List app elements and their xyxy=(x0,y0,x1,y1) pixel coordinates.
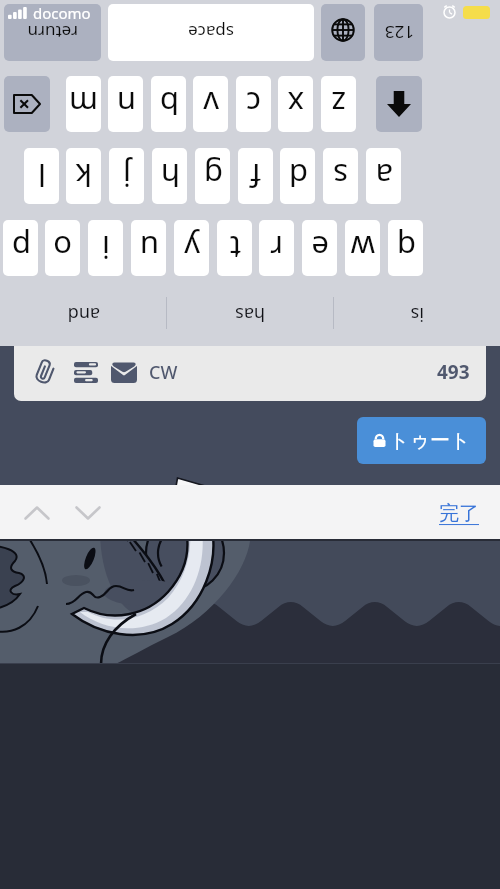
staticText: CW xyxy=(149,360,178,385)
staticText: is xyxy=(410,302,424,327)
button[interactable] xyxy=(321,4,365,61)
staticText: s xyxy=(333,155,348,197)
button[interactable]: j xyxy=(109,148,144,204)
button[interactable]: z xyxy=(321,76,356,132)
button[interactable]: i xyxy=(88,220,123,276)
button[interactable]: Change visibility xyxy=(108,356,140,388)
button[interactable]: space xyxy=(108,4,314,61)
button[interactable]: h xyxy=(152,148,187,204)
staticText: b xyxy=(159,83,179,125)
staticText: has xyxy=(235,302,265,327)
staticText: f xyxy=(250,155,261,197)
staticText: and xyxy=(67,302,100,327)
staticText: z xyxy=(331,83,346,125)
button[interactable]: s xyxy=(323,148,358,204)
staticText: e xyxy=(311,227,329,269)
staticText: r xyxy=(270,227,283,269)
button[interactable]: 123 xyxy=(374,4,423,61)
button[interactable]: w xyxy=(345,220,380,276)
button[interactable]: Next field xyxy=(69,495,107,531)
staticText: h xyxy=(160,155,180,197)
staticText: o xyxy=(53,227,72,269)
staticText: y xyxy=(184,227,200,269)
button[interactable]: x xyxy=(278,76,313,132)
other: Next keyboard xyxy=(331,18,355,42)
staticText: c xyxy=(246,83,261,125)
button[interactable]: g xyxy=(195,148,230,204)
staticText: p xyxy=(11,227,31,269)
button[interactable] xyxy=(376,76,422,132)
button[interactable]: y xyxy=(174,220,209,276)
staticText: t xyxy=(229,227,241,269)
staticText: m xyxy=(69,83,98,125)
staticText: x xyxy=(287,83,304,125)
button[interactable]: d xyxy=(280,148,315,204)
button[interactable] xyxy=(4,76,50,132)
button[interactable]: r xyxy=(259,220,294,276)
other: Shift xyxy=(387,91,411,117)
button[interactable]: t xyxy=(217,220,252,276)
button[interactable]: Add media xyxy=(29,356,61,388)
button[interactable]: n xyxy=(108,76,143,132)
button[interactable]: v xyxy=(193,76,228,132)
staticText: u xyxy=(139,227,159,269)
staticText: return xyxy=(27,21,78,44)
button[interactable]: Previous field xyxy=(18,495,56,531)
button[interactable]: p xyxy=(3,220,38,276)
button[interactable]: m xyxy=(66,76,101,132)
button[interactable]: c xyxy=(236,76,271,132)
staticText: docomo xyxy=(33,3,91,23)
staticText: d xyxy=(288,155,308,197)
staticText: n xyxy=(116,83,136,125)
staticText: l xyxy=(38,155,46,197)
button[interactable]: has xyxy=(178,288,322,340)
button[interactable]: 完了 xyxy=(430,493,488,533)
button[interactable]: e xyxy=(302,220,337,276)
button[interactable]: q xyxy=(388,220,423,276)
button[interactable]: o xyxy=(45,220,80,276)
button[interactable]: u xyxy=(131,220,166,276)
staticText: 123 xyxy=(384,21,414,44)
staticText: q xyxy=(396,227,416,269)
button[interactable]: k xyxy=(66,148,101,204)
staticText: トゥート xyxy=(389,428,471,453)
staticText: 493 xyxy=(437,359,470,385)
staticText: v xyxy=(203,83,219,125)
button[interactable]: l xyxy=(24,148,59,204)
button[interactable]: Add poll xyxy=(70,356,102,388)
staticText: k xyxy=(75,155,92,197)
button[interactable]: return xyxy=(4,4,101,61)
staticText: i xyxy=(102,227,110,269)
other: Delete xyxy=(13,94,41,114)
button[interactable]: is xyxy=(345,288,489,340)
button[interactable]: and xyxy=(11,288,155,340)
button[interactable]: CW xyxy=(140,356,186,388)
staticText: w xyxy=(350,227,375,269)
staticText: g xyxy=(203,155,223,197)
staticText: a xyxy=(375,155,393,197)
button[interactable]: トゥート xyxy=(357,417,486,464)
staticText: 完了 xyxy=(439,501,479,526)
button[interactable]: f xyxy=(238,148,273,204)
staticText: space xyxy=(188,21,234,44)
button[interactable]: a xyxy=(366,148,401,204)
staticText: j xyxy=(123,155,131,197)
button[interactable]: b xyxy=(151,76,186,132)
